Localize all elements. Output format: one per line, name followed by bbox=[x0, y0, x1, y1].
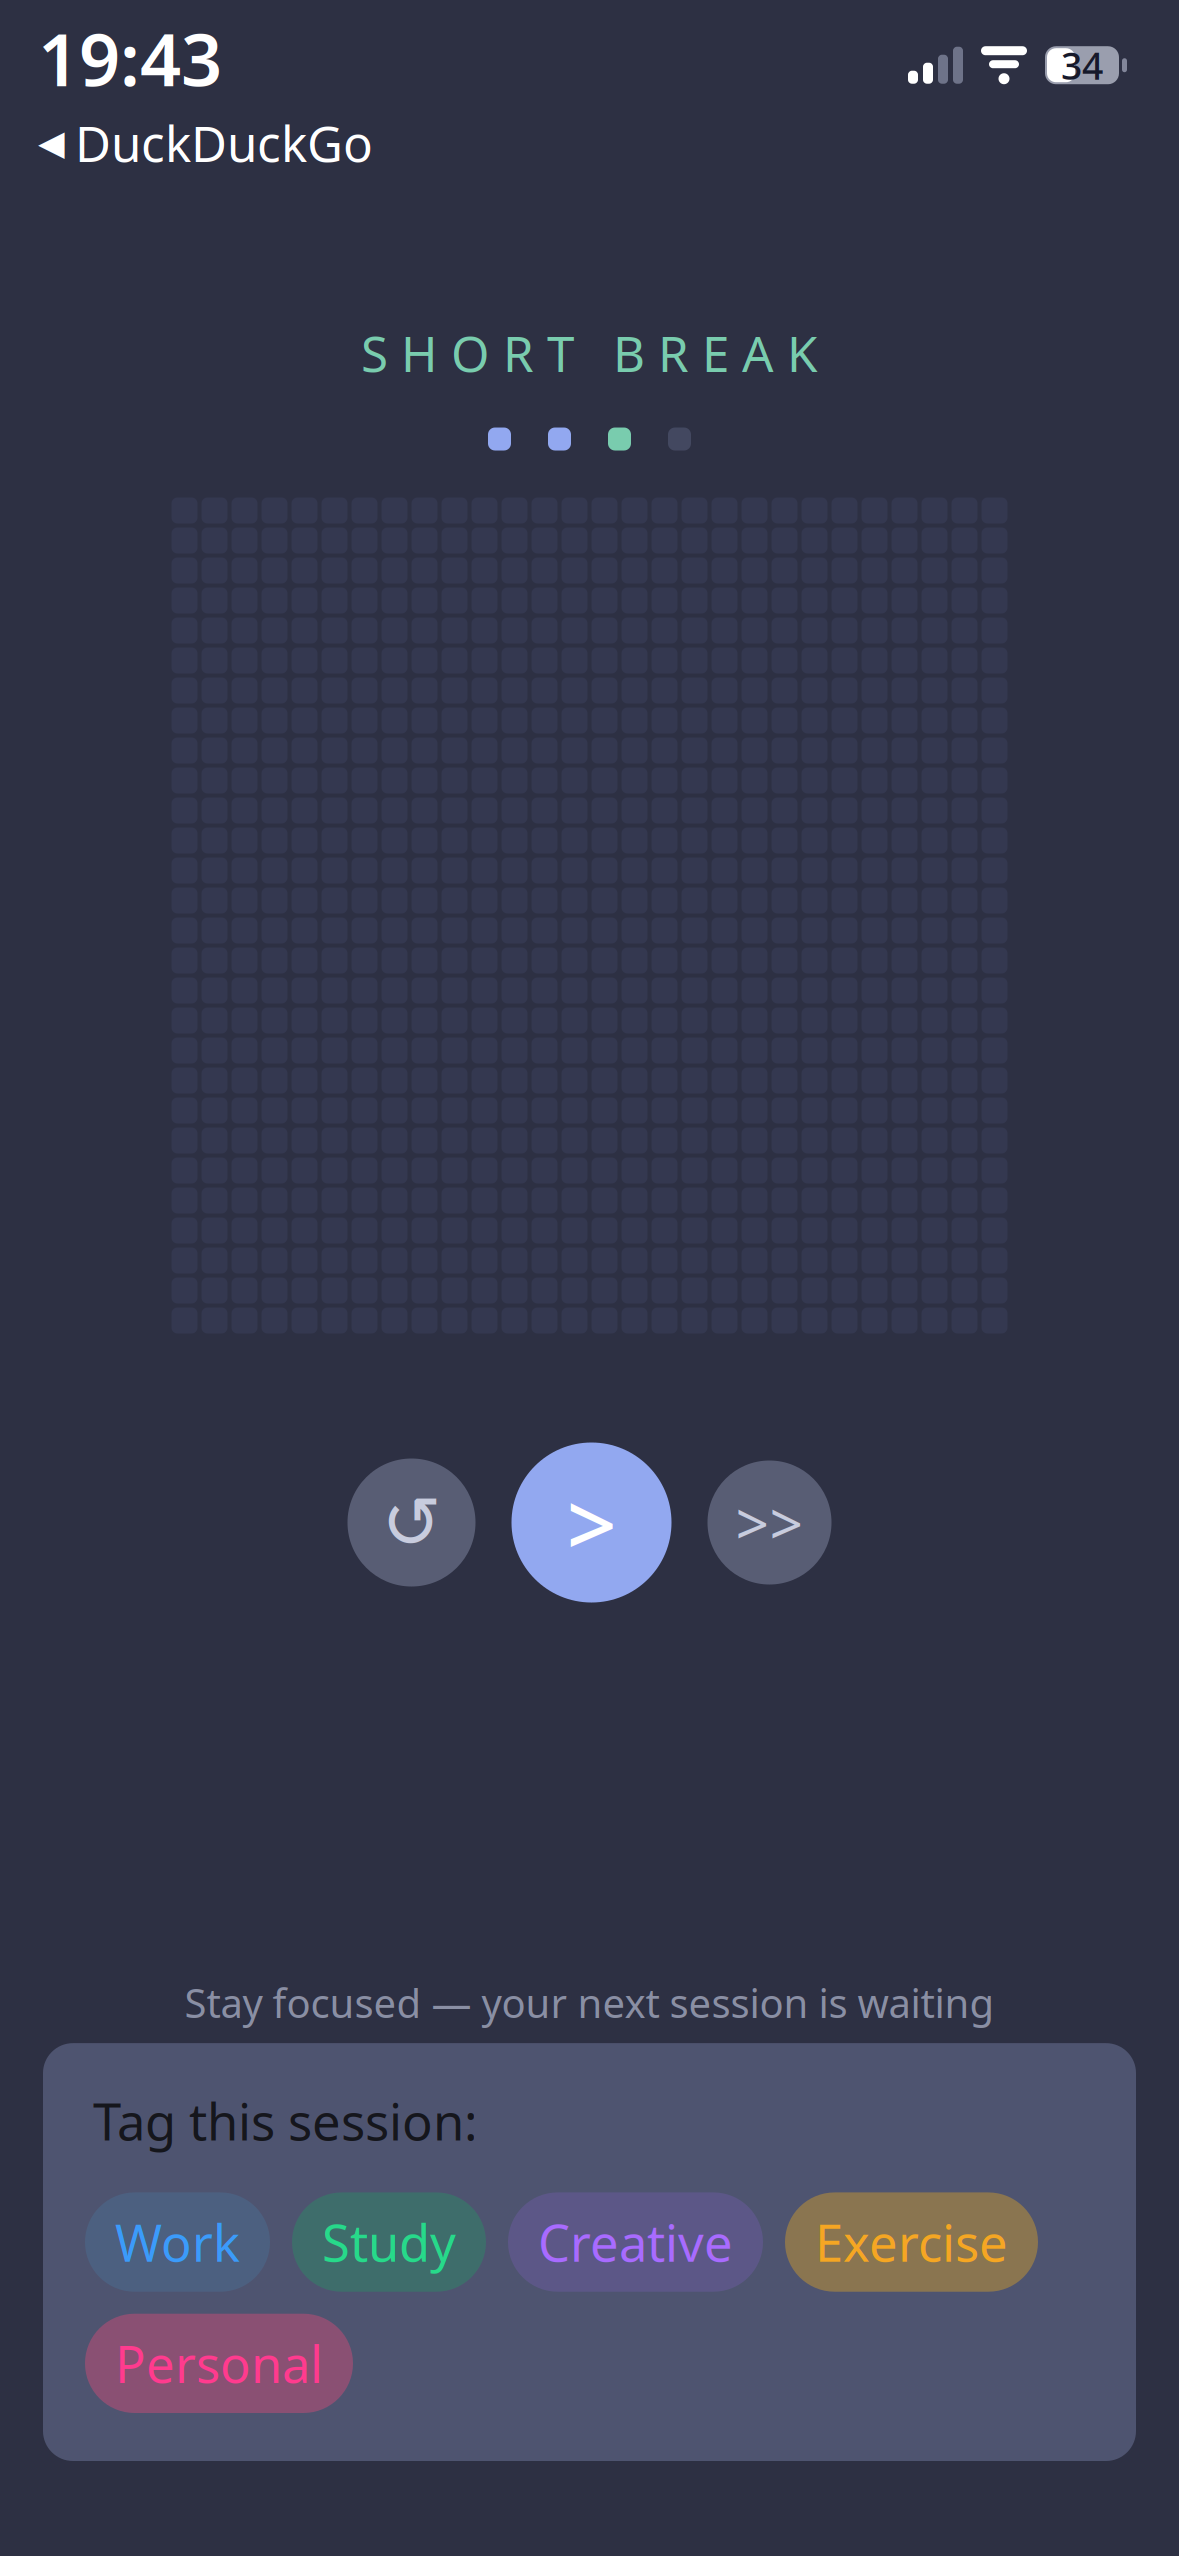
button[interactable]: Skip to next session bbox=[707, 1460, 831, 1584]
staticText: ↺ bbox=[381, 1482, 441, 1563]
staticText: Study bbox=[322, 2208, 456, 2276]
button[interactable]: Reset timer bbox=[347, 1458, 475, 1586]
staticText: 34 bbox=[1061, 40, 1103, 90]
staticText: Stay focused — your next session is wait… bbox=[184, 1976, 994, 2029]
staticText: DuckDuckGo bbox=[75, 110, 373, 176]
staticText: 19:43 bbox=[38, 10, 222, 106]
staticText: Work bbox=[115, 2208, 240, 2276]
button[interactable]: Personal bbox=[85, 2314, 353, 2413]
staticText: >> bbox=[735, 1484, 803, 1561]
staticText: Personal bbox=[115, 2330, 323, 2397]
staticText: Tag this session: bbox=[93, 2087, 478, 2154]
staticText: > bbox=[566, 1464, 616, 1581]
staticText: S H O R T B R E A K bbox=[361, 320, 818, 385]
button[interactable]: ◀ bbox=[38, 110, 373, 176]
button[interactable]: Study bbox=[292, 2192, 486, 2292]
button[interactable]: Creative bbox=[508, 2192, 763, 2292]
button[interactable]: Work bbox=[85, 2192, 270, 2292]
staticText: Exercise bbox=[815, 2208, 1008, 2276]
staticText: Creative bbox=[538, 2208, 733, 2276]
button[interactable]: Start timer bbox=[511, 1442, 671, 1602]
staticText: ◀ bbox=[38, 123, 65, 162]
button[interactable]: Exercise bbox=[785, 2192, 1038, 2292]
